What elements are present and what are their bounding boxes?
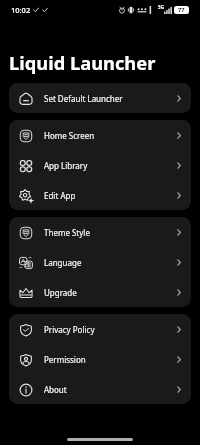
button[interactable]: Theme Style — [9, 217, 191, 247]
button[interactable]: Upgrade — [9, 277, 191, 307]
button[interactable]: Set Default Launcher — [9, 83, 191, 113]
button[interactable]: About — [9, 374, 191, 404]
staticText: Set Default Launcher — [44, 93, 123, 104]
staticText: Theme Style — [44, 227, 90, 238]
button[interactable]: App Library — [9, 150, 191, 180]
button[interactable]: Home Screen — [9, 120, 191, 150]
staticText: Permission — [44, 354, 86, 365]
staticText: 5G — [158, 4, 164, 10]
staticText: Language — [44, 257, 82, 268]
button[interactable]: Permission — [9, 344, 191, 374]
staticText: Privacy Policy — [44, 324, 95, 335]
staticText: 10:02 — [11, 5, 31, 15]
staticText: App Library — [44, 160, 88, 171]
button[interactable]: Language — [9, 247, 191, 277]
staticText: Edit App — [44, 190, 76, 201]
staticText: Home Screen — [44, 130, 95, 141]
button[interactable]: Edit App — [9, 180, 191, 210]
staticText: Upgrade — [44, 287, 77, 298]
staticText: About — [44, 384, 67, 395]
staticText: 77 — [178, 6, 185, 14]
button[interactable]: Privacy Policy — [9, 314, 191, 344]
staticText: Liquid Launcher — [9, 50, 156, 75]
